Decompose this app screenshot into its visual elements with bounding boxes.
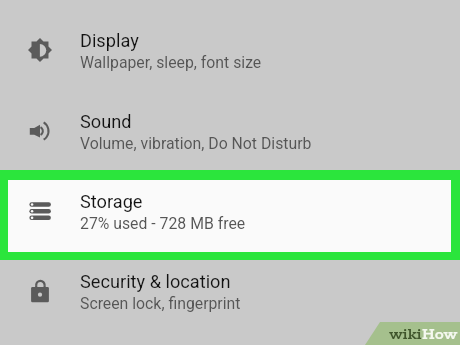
staticText: Volume, vibration, Do Not Disturb xyxy=(80,134,312,153)
staticText: Screen lock, fingerprint xyxy=(80,294,241,313)
staticText: Sound xyxy=(80,111,132,132)
other: Sound xyxy=(28,119,52,143)
other: Display xyxy=(28,38,52,62)
staticText: Security & location xyxy=(80,271,231,292)
staticText: Wallpaper, sleep, font size xyxy=(80,53,262,72)
button[interactable]: Display xyxy=(0,10,460,90)
other: Storage xyxy=(28,199,52,223)
button[interactable]: Security & location xyxy=(0,251,460,331)
staticText: 27% used - 728 MB free xyxy=(80,214,246,233)
staticText: Display xyxy=(80,30,139,51)
button[interactable] xyxy=(8,180,451,252)
other: Security & location xyxy=(28,279,52,303)
staticText: How xyxy=(422,324,458,344)
button[interactable]: Sound xyxy=(0,91,460,171)
staticText: Storage xyxy=(80,191,143,212)
staticText: wiki xyxy=(389,324,422,344)
